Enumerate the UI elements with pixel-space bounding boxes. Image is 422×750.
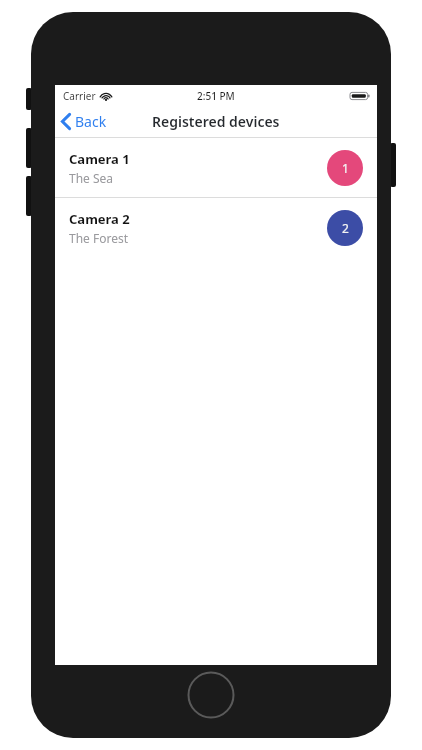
- staticText: Back: [75, 112, 107, 131]
- staticText: Camera 1: [69, 150, 130, 168]
- staticText: Registered devices: [152, 112, 280, 131]
- staticText: 2: [342, 220, 349, 236]
- staticText: Carrier: [63, 89, 96, 103]
- staticText: Camera 2: [69, 210, 130, 228]
- staticText: The Sea: [69, 170, 114, 186]
- button[interactable]: Camera 2: [55, 198, 377, 257]
- button[interactable]: Home: [187, 671, 235, 719]
- button[interactable]: Camera 1: [55, 138, 377, 197]
- button[interactable]: Back: [55, 106, 117, 137]
- staticText: The Forest: [69, 230, 129, 246]
- staticText: 1: [342, 160, 349, 176]
- staticText: 2:51 PM: [197, 89, 235, 103]
